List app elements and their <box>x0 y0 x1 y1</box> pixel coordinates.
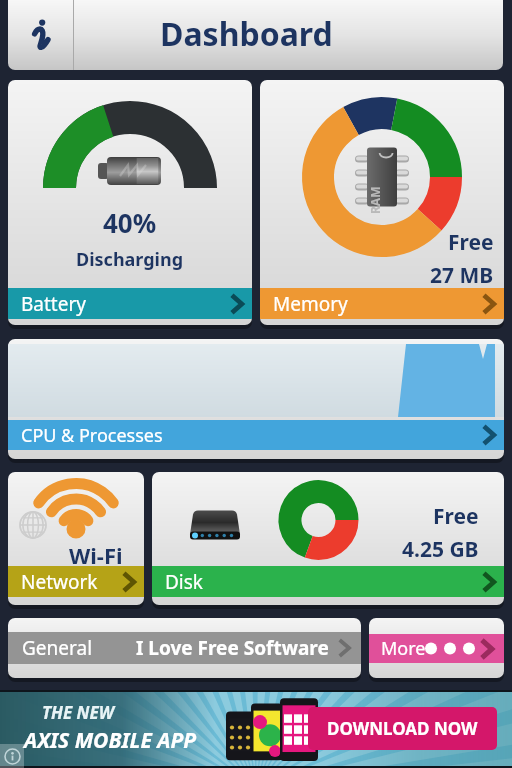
staticText: DOWNLOAD NOW <box>327 717 478 740</box>
button[interactable]: Wi-Fi <box>8 472 144 605</box>
staticText: More <box>381 636 426 661</box>
staticText: Wi-Fi <box>69 540 123 570</box>
button[interactable]: More <box>369 618 504 678</box>
staticText: Memory <box>273 291 348 317</box>
staticText: General <box>22 635 93 661</box>
staticText: Dashboard <box>160 12 333 56</box>
staticText: Network <box>21 569 98 595</box>
button[interactable]: General <box>8 618 361 678</box>
button[interactable]: Advertisement <box>0 690 512 768</box>
button[interactable]: Info <box>8 0 73 70</box>
button[interactable]: RAM <box>260 80 504 325</box>
staticText: AXIS MOBILE APP <box>24 726 197 755</box>
staticText: 40% <box>103 205 157 240</box>
staticText: THE NEW <box>42 701 114 724</box>
staticText: Free <box>433 502 479 531</box>
staticText: Discharging <box>76 247 184 272</box>
staticText: Free <box>448 228 494 257</box>
staticText: RAM <box>367 186 383 214</box>
button[interactable]: Free <box>152 472 504 605</box>
staticText: I Love Free Software <box>136 635 329 661</box>
staticText: CPU & Processes <box>21 423 163 448</box>
button[interactable]: 40% <box>8 80 252 325</box>
staticText: Disk <box>165 569 204 595</box>
staticText: Battery <box>21 291 86 317</box>
button[interactable]: CPU & Processes <box>8 339 504 459</box>
staticText: 27 MB <box>430 261 494 290</box>
staticText: 4.25 GB <box>402 535 479 564</box>
